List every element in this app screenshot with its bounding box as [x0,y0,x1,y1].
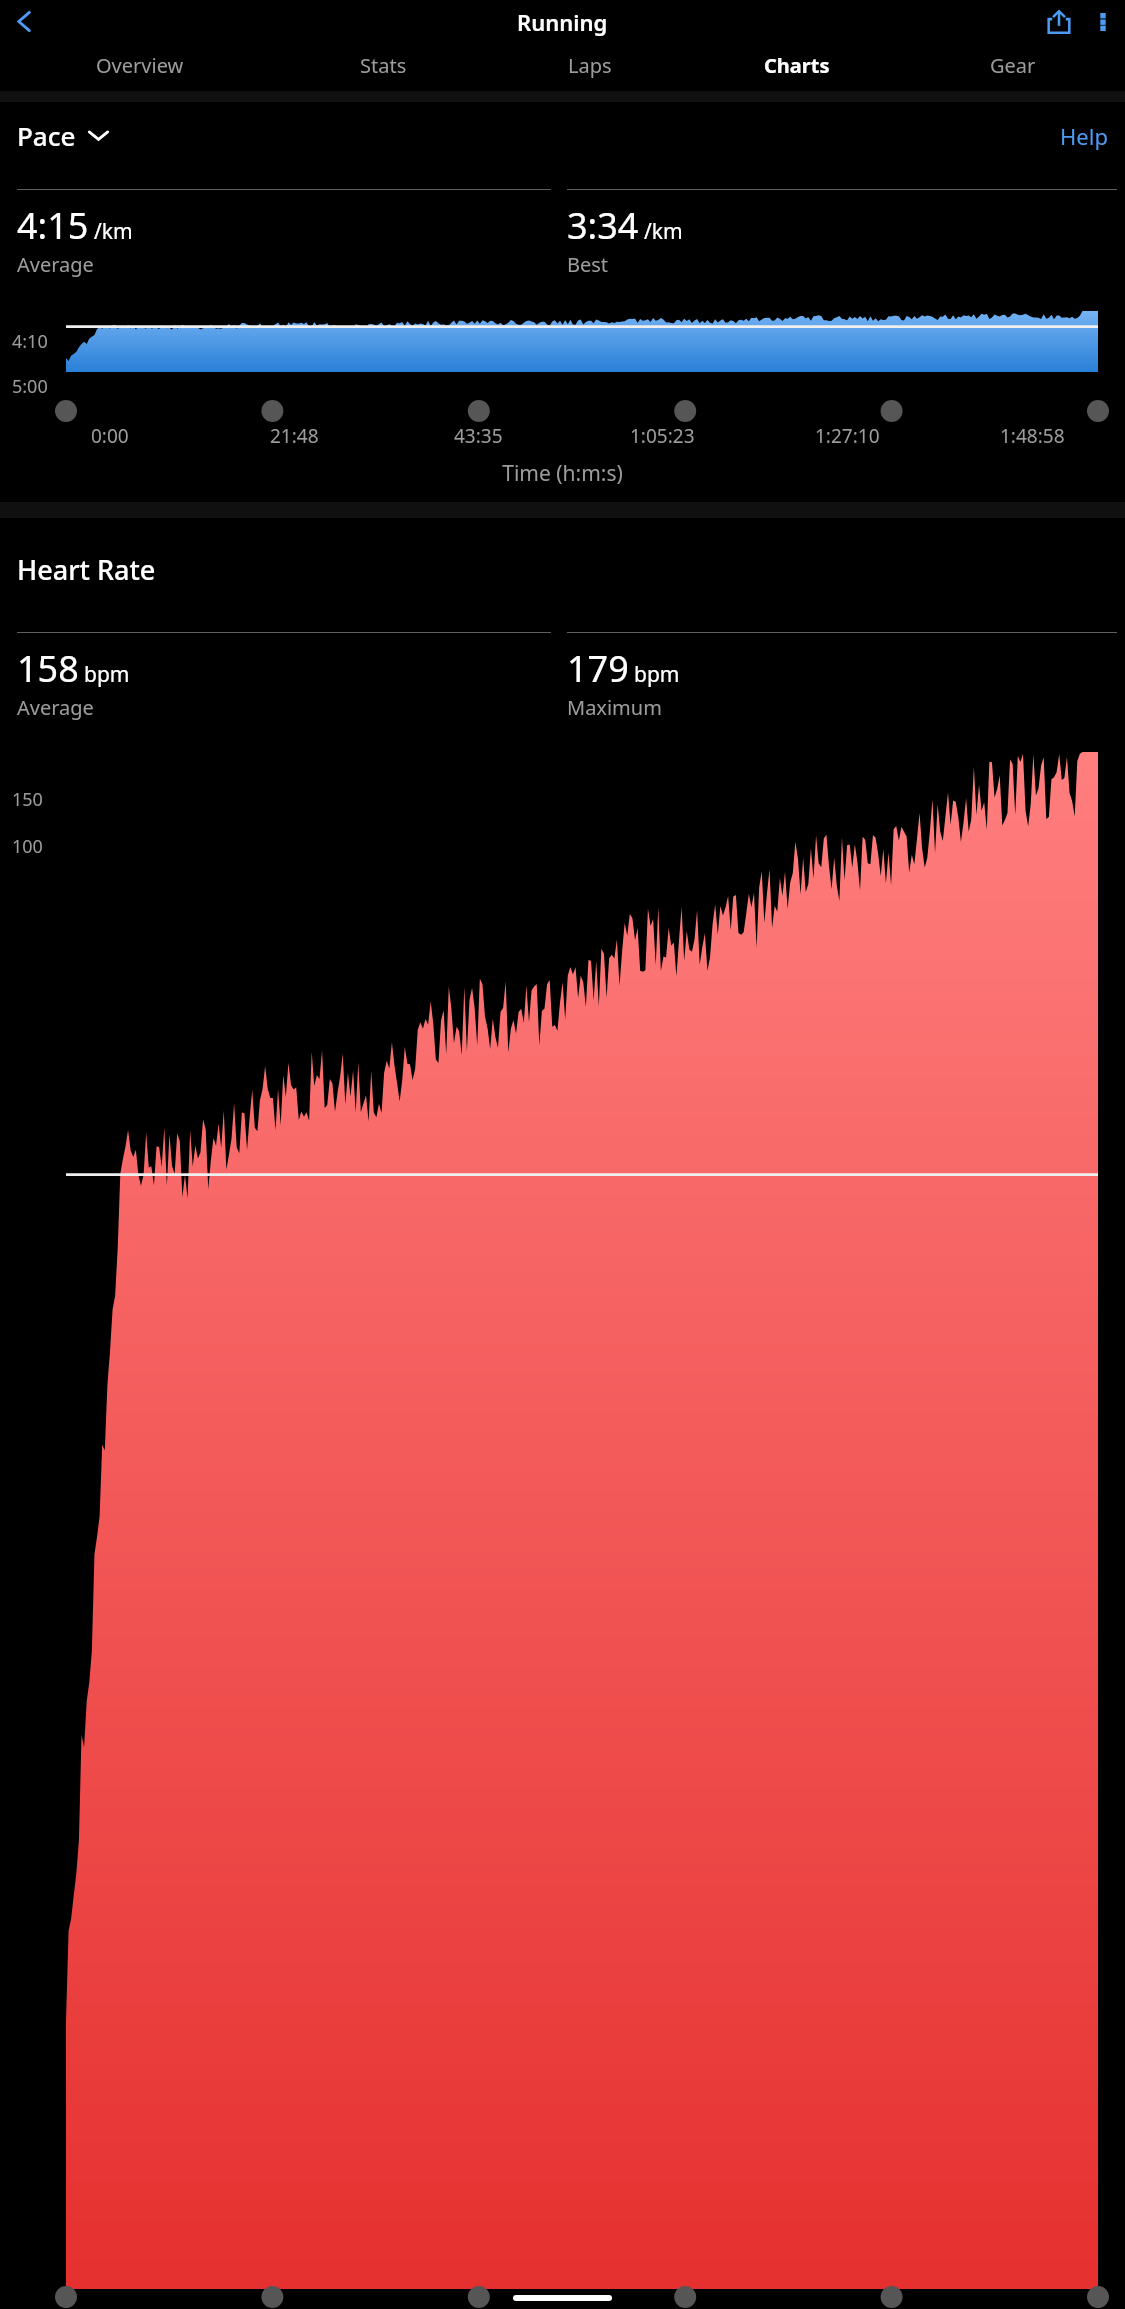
staticText: Average [17,694,94,721]
staticText: 1:05:23 [630,423,695,449]
staticText: 179 [567,644,629,693]
staticText: Laps [568,52,612,79]
staticText: Help [1060,121,1108,151]
staticText: Stats [360,52,407,79]
staticText: Time (h:m:s) [0,459,1125,488]
button[interactable]: Pace [17,118,109,153]
staticText: Best [567,251,609,278]
staticText: Pace [17,118,76,153]
staticText: 100 [12,834,43,859]
staticText: 3:34 [567,201,639,250]
staticText: bpm [634,660,680,689]
staticText: Overview [96,52,184,79]
staticText: Average [17,251,94,278]
staticText: 4:15 [17,201,89,250]
staticText: Gear [990,52,1036,79]
staticText: 1:27:10 [815,423,880,449]
staticText: 0:00 [91,423,129,449]
button[interactable]: Help [1060,121,1108,151]
staticText: 43:35 [454,423,503,449]
staticText: 5:00 [12,374,48,399]
staticText: 4:10 [12,329,48,354]
staticText: 158 [17,644,79,693]
staticText: Charts [764,52,830,79]
button[interactable]: More options [1081,0,1125,43]
staticText: Maximum [567,694,662,721]
staticText: Heart Rate [17,551,156,588]
staticText: bpm [84,660,130,689]
staticText: 150 [12,787,43,812]
button[interactable]: Share [1037,0,1081,43]
staticText: 21:48 [270,423,319,449]
button[interactable]: Laps [486,43,693,91]
staticText: /km [644,217,683,246]
button[interactable]: Stats [280,43,486,91]
button[interactable]: Charts [693,43,900,91]
button[interactable]: Overview [0,43,280,91]
button[interactable]: Gear [900,43,1125,91]
button[interactable]: Back [2,0,46,43]
staticText: Running [517,7,608,37]
staticText: 1:48:58 [1000,423,1065,449]
staticText: /km [94,217,133,246]
